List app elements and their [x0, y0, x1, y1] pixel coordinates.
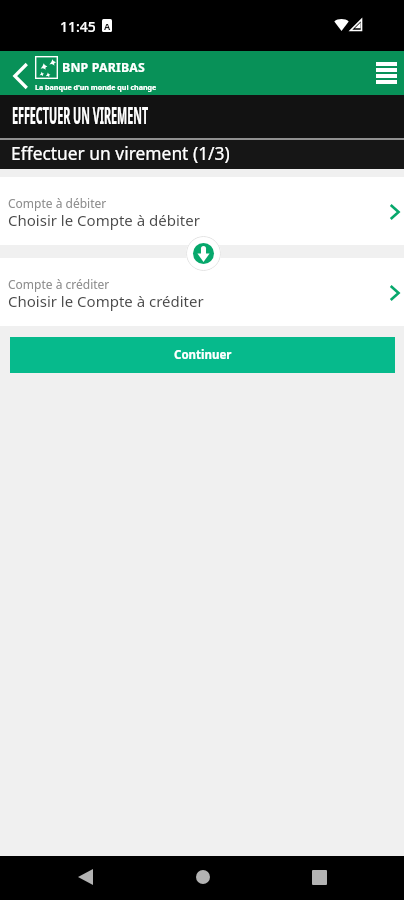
button[interactable]: Continuer — [10, 337, 395, 373]
staticText: La banque d'un monde qui change — [35, 82, 157, 92]
button[interactable]: Inverser les comptes — [186, 236, 221, 271]
staticText: BNP PARIBAS — [62, 59, 146, 76]
staticText: Continuer — [174, 347, 232, 363]
staticText: Compte à débiter — [8, 195, 107, 211]
button[interactable]: Retour — [4, 54, 36, 98]
staticText: EFFECTUER UN VIREMENT — [12, 99, 148, 130]
button[interactable]: Compte à créditer — [0, 258, 404, 326]
staticText: Choisir le Compte à débiter — [8, 210, 200, 230]
staticText: 11:45 — [60, 17, 96, 36]
button[interactable]: Retour — [63, 855, 107, 899]
staticText: Choisir le Compte à créditer — [8, 291, 204, 311]
button[interactable]: Compte à débiter — [0, 177, 404, 245]
button[interactable]: Accueil — [181, 855, 225, 899]
button[interactable]: Menu — [364, 51, 404, 95]
staticText: Compte à créditer — [8, 276, 110, 292]
staticText: Effectuer un virement (1/3) — [11, 141, 230, 165]
staticText: A — [104, 20, 111, 32]
button[interactable]: Applications récentes — [297, 855, 341, 899]
